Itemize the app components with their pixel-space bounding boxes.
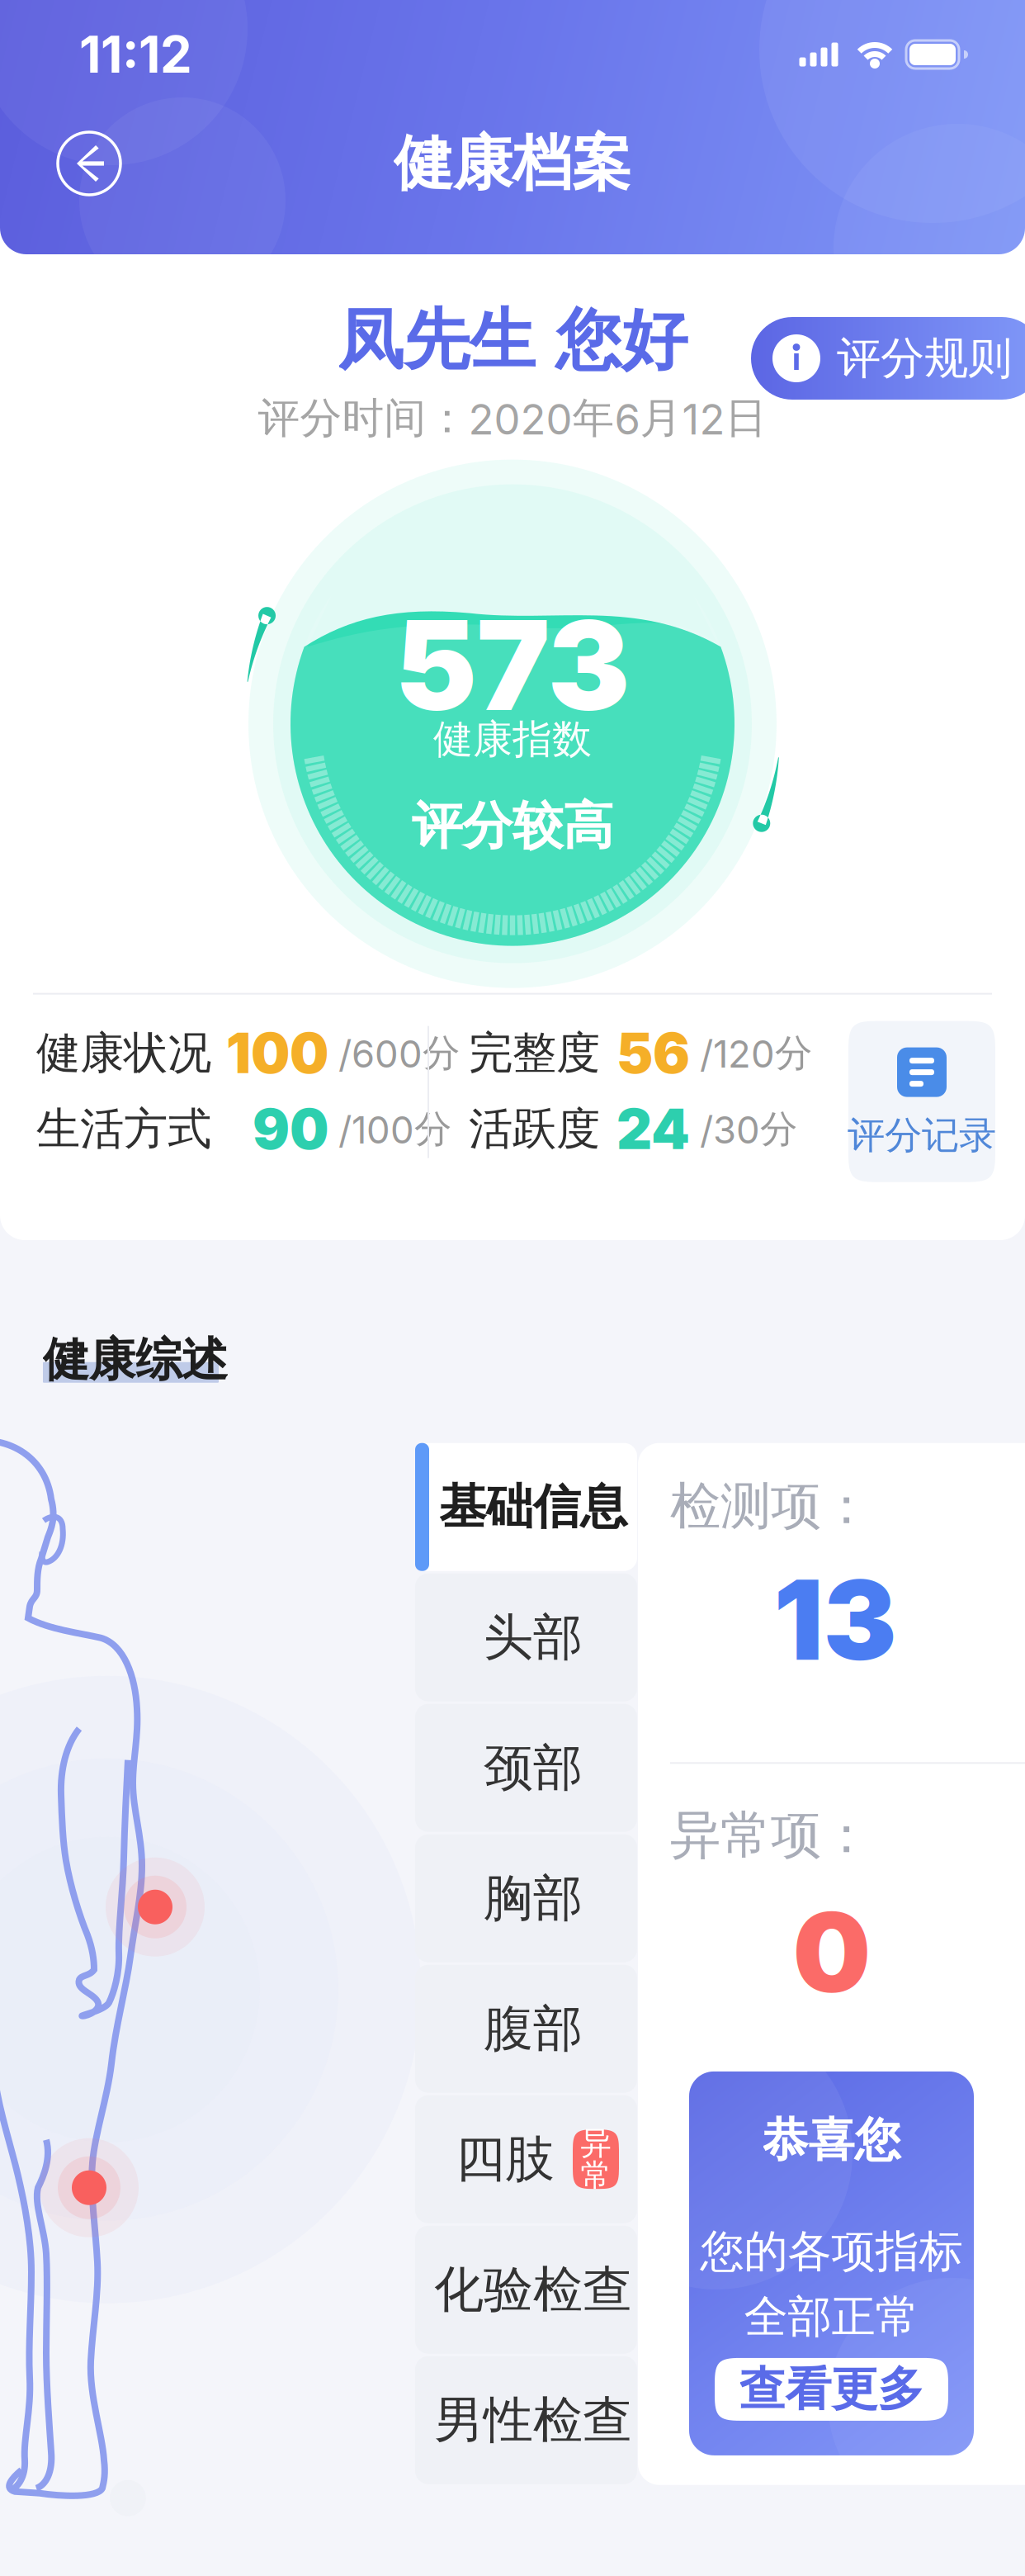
button[interactable]: 男性检查 bbox=[415, 2356, 637, 2484]
staticText: 全部正常 bbox=[744, 2289, 919, 2345]
staticText: 异 bbox=[581, 2124, 611, 2163]
staticText: 头部 bbox=[484, 1606, 583, 1669]
button[interactable]: 查看更多 bbox=[715, 2358, 948, 2421]
button[interactable]: 头部 bbox=[415, 1573, 637, 1701]
staticText: 化验检查 bbox=[434, 2258, 632, 2321]
staticText: 13 bbox=[774, 1553, 897, 1686]
staticText: 健康档案 bbox=[394, 126, 631, 201]
staticText: 胸部 bbox=[484, 1867, 583, 1930]
staticText: 完整度 bbox=[469, 1025, 600, 1081]
staticText: 90 bbox=[253, 1096, 328, 1163]
staticText: 查看更多 bbox=[739, 2360, 924, 2418]
staticText: 检测项： bbox=[670, 1474, 871, 1538]
staticText: /600分 bbox=[338, 1030, 460, 1077]
button[interactable]: Back bbox=[35, 114, 144, 213]
staticText: 基础信息 bbox=[439, 1477, 627, 1537]
staticText: 四肢 bbox=[456, 2128, 555, 2190]
staticText: 573 bbox=[395, 591, 630, 740]
staticText: /30分 bbox=[700, 1106, 797, 1153]
staticText: 活跃度 bbox=[469, 1101, 600, 1157]
button[interactable]: 四肢 bbox=[415, 2095, 637, 2223]
staticText: 男性检查 bbox=[434, 2389, 632, 2451]
staticText: 11:12 bbox=[79, 24, 192, 85]
button[interactable]: 腹部 bbox=[415, 1965, 637, 2093]
staticText: 颈部 bbox=[484, 1737, 583, 1799]
staticText: 凤先生 您好 bbox=[338, 299, 687, 382]
staticText: 100 bbox=[226, 1020, 328, 1087]
button[interactable]: 评分记录 bbox=[848, 1021, 995, 1182]
staticText: 评分时间：2020年6月12日 bbox=[258, 392, 767, 445]
staticText: 常 bbox=[581, 2156, 611, 2195]
button[interactable]: 化验检查 bbox=[415, 2226, 637, 2354]
staticText: 腹部 bbox=[484, 1998, 583, 2060]
button[interactable]: 颈部 bbox=[415, 1704, 637, 1832]
staticText: 健康状况 bbox=[36, 1025, 211, 1081]
button[interactable]: 基础信息 bbox=[415, 1443, 637, 1571]
staticText: 0 bbox=[793, 1885, 871, 2019]
staticText: 评分规则 bbox=[837, 331, 1012, 386]
button[interactable]: 评分规则 bbox=[751, 317, 1025, 400]
staticText: 异常项： bbox=[670, 1803, 871, 1867]
staticText: /120分 bbox=[700, 1030, 812, 1077]
staticText: 24 bbox=[616, 1096, 690, 1163]
staticText: 恭喜您 bbox=[762, 2111, 901, 2169]
staticText: 您的各项指标 bbox=[700, 2224, 963, 2279]
staticText: 健康综述 bbox=[43, 1331, 228, 1389]
staticText: 评分记录 bbox=[848, 1112, 996, 1159]
button[interactable]: 胸部 bbox=[415, 1834, 637, 1962]
staticText: 生活方式 bbox=[36, 1101, 211, 1157]
staticText: 56 bbox=[616, 1020, 690, 1087]
staticText: /100分 bbox=[338, 1106, 451, 1153]
staticText: 健康指数 bbox=[433, 715, 592, 764]
staticText: 评分较高 bbox=[412, 794, 613, 858]
